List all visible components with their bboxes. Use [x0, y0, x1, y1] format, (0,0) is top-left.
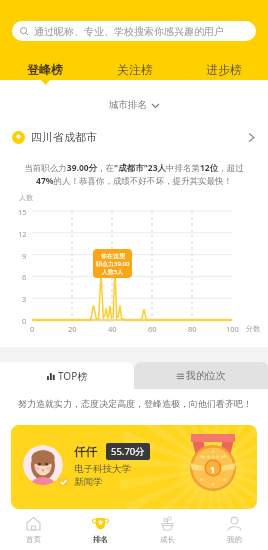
button[interactable]: 成长	[134, 509, 201, 550]
button[interactable]: 城市排名	[109, 99, 160, 111]
staticText: 四川省成都市	[31, 130, 97, 144]
staticText: 新闻学	[74, 476, 103, 488]
staticText: 40	[108, 324, 117, 334]
staticText: 职么力39.00	[96, 260, 130, 268]
staticText: 通过昵称、专业、学校搜索你感兴趣的用户	[34, 25, 224, 38]
staticText: 0	[22, 316, 27, 326]
staticText: 排名	[93, 535, 108, 544]
staticText: 分数	[246, 324, 260, 333]
button[interactable]: 关注榜	[90, 59, 179, 79]
staticText: 20	[68, 324, 77, 334]
staticText: 我的	[227, 535, 242, 544]
staticText: 成长	[160, 535, 175, 544]
staticText: 人数	[19, 193, 33, 202]
button[interactable]: 进步榜	[179, 59, 268, 79]
button[interactable]: 1	[11, 425, 257, 509]
button[interactable]: 首页	[0, 509, 67, 550]
staticText: 关注榜	[117, 62, 153, 77]
staticText: 9	[22, 251, 27, 261]
button[interactable]: 四川省成都市	[12, 129, 257, 145]
staticText: 进步榜	[206, 62, 242, 77]
staticText: 仟仟	[74, 445, 97, 459]
staticText: 6	[22, 272, 27, 282]
button[interactable]: 我的位次	[134, 362, 268, 389]
staticText: 我的位次	[186, 369, 226, 382]
staticText: 登峰榜	[27, 62, 63, 77]
staticText: 0	[30, 324, 35, 334]
staticText: 15	[18, 207, 27, 217]
staticText: 人数5人	[102, 268, 124, 276]
button[interactable]: 登峰榜	[0, 59, 90, 79]
staticText: 12	[18, 229, 27, 239]
button[interactable]: 通过昵称、专业、学校搜索你感兴趣的用户	[12, 21, 256, 41]
button[interactable]: 我的	[201, 509, 268, 550]
staticText: 55.70分	[111, 445, 145, 458]
staticText: 电子科技大学	[74, 463, 131, 475]
staticText: 努力造就实力，态度决定高度，登峰造极，向他们看齐吧！	[18, 398, 252, 409]
staticText: 1	[210, 463, 216, 475]
staticText: 80	[188, 324, 197, 334]
staticText: 60	[148, 324, 157, 334]
staticText: 首页	[26, 535, 41, 544]
button[interactable]: 排名	[67, 509, 134, 550]
staticText: 100	[226, 324, 239, 334]
staticText: 3	[22, 294, 27, 304]
staticText: 城市排名	[109, 99, 147, 111]
button[interactable]: TOP榜	[0, 362, 134, 389]
staticText: 当前职么力39.00分，在"成都市"23人中排名第12位，超过47%的人！恭喜你…	[16, 162, 252, 187]
staticText: 你在这里	[101, 252, 125, 260]
staticText: TOP榜	[58, 369, 88, 383]
